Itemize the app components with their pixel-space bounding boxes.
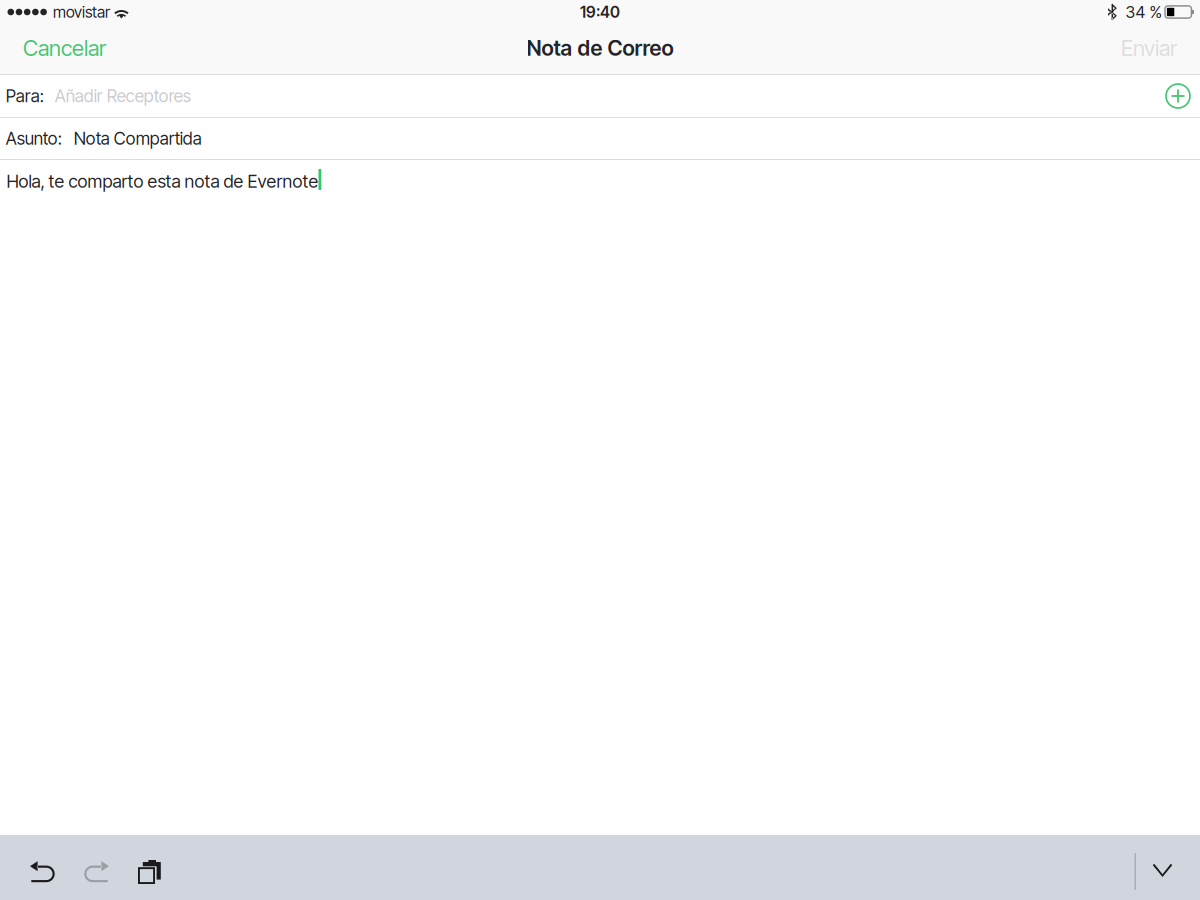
staticText: Añadir Receptores: [55, 85, 191, 106]
staticText: Hola, te comparto esta nota de Evernote: [6, 170, 318, 192]
button[interactable]: Deshacer: [0, 835, 70, 900]
staticText: Cancelar: [23, 35, 106, 61]
button[interactable]: Pegar: [124, 835, 177, 900]
button[interactable]: Añadir destinatario: [1156, 76, 1200, 116]
staticText: Para:: [6, 85, 44, 106]
staticText: Nota de Correo: [526, 35, 673, 61]
staticText: 19:40: [580, 2, 620, 21]
button[interactable]: Enviar: [1107, 27, 1200, 71]
button[interactable]: Ocultar teclado: [1136, 833, 1200, 900]
staticText: movistar: [53, 2, 110, 21]
button[interactable]: Cancelar: [0, 27, 120, 71]
staticText: 34 %: [1125, 2, 1161, 22]
staticText: Enviar: [1121, 35, 1177, 61]
staticText: Nota Compartida: [74, 128, 202, 149]
staticText: Asunto:: [6, 128, 62, 149]
button[interactable]: Rehacer: [70, 835, 124, 900]
